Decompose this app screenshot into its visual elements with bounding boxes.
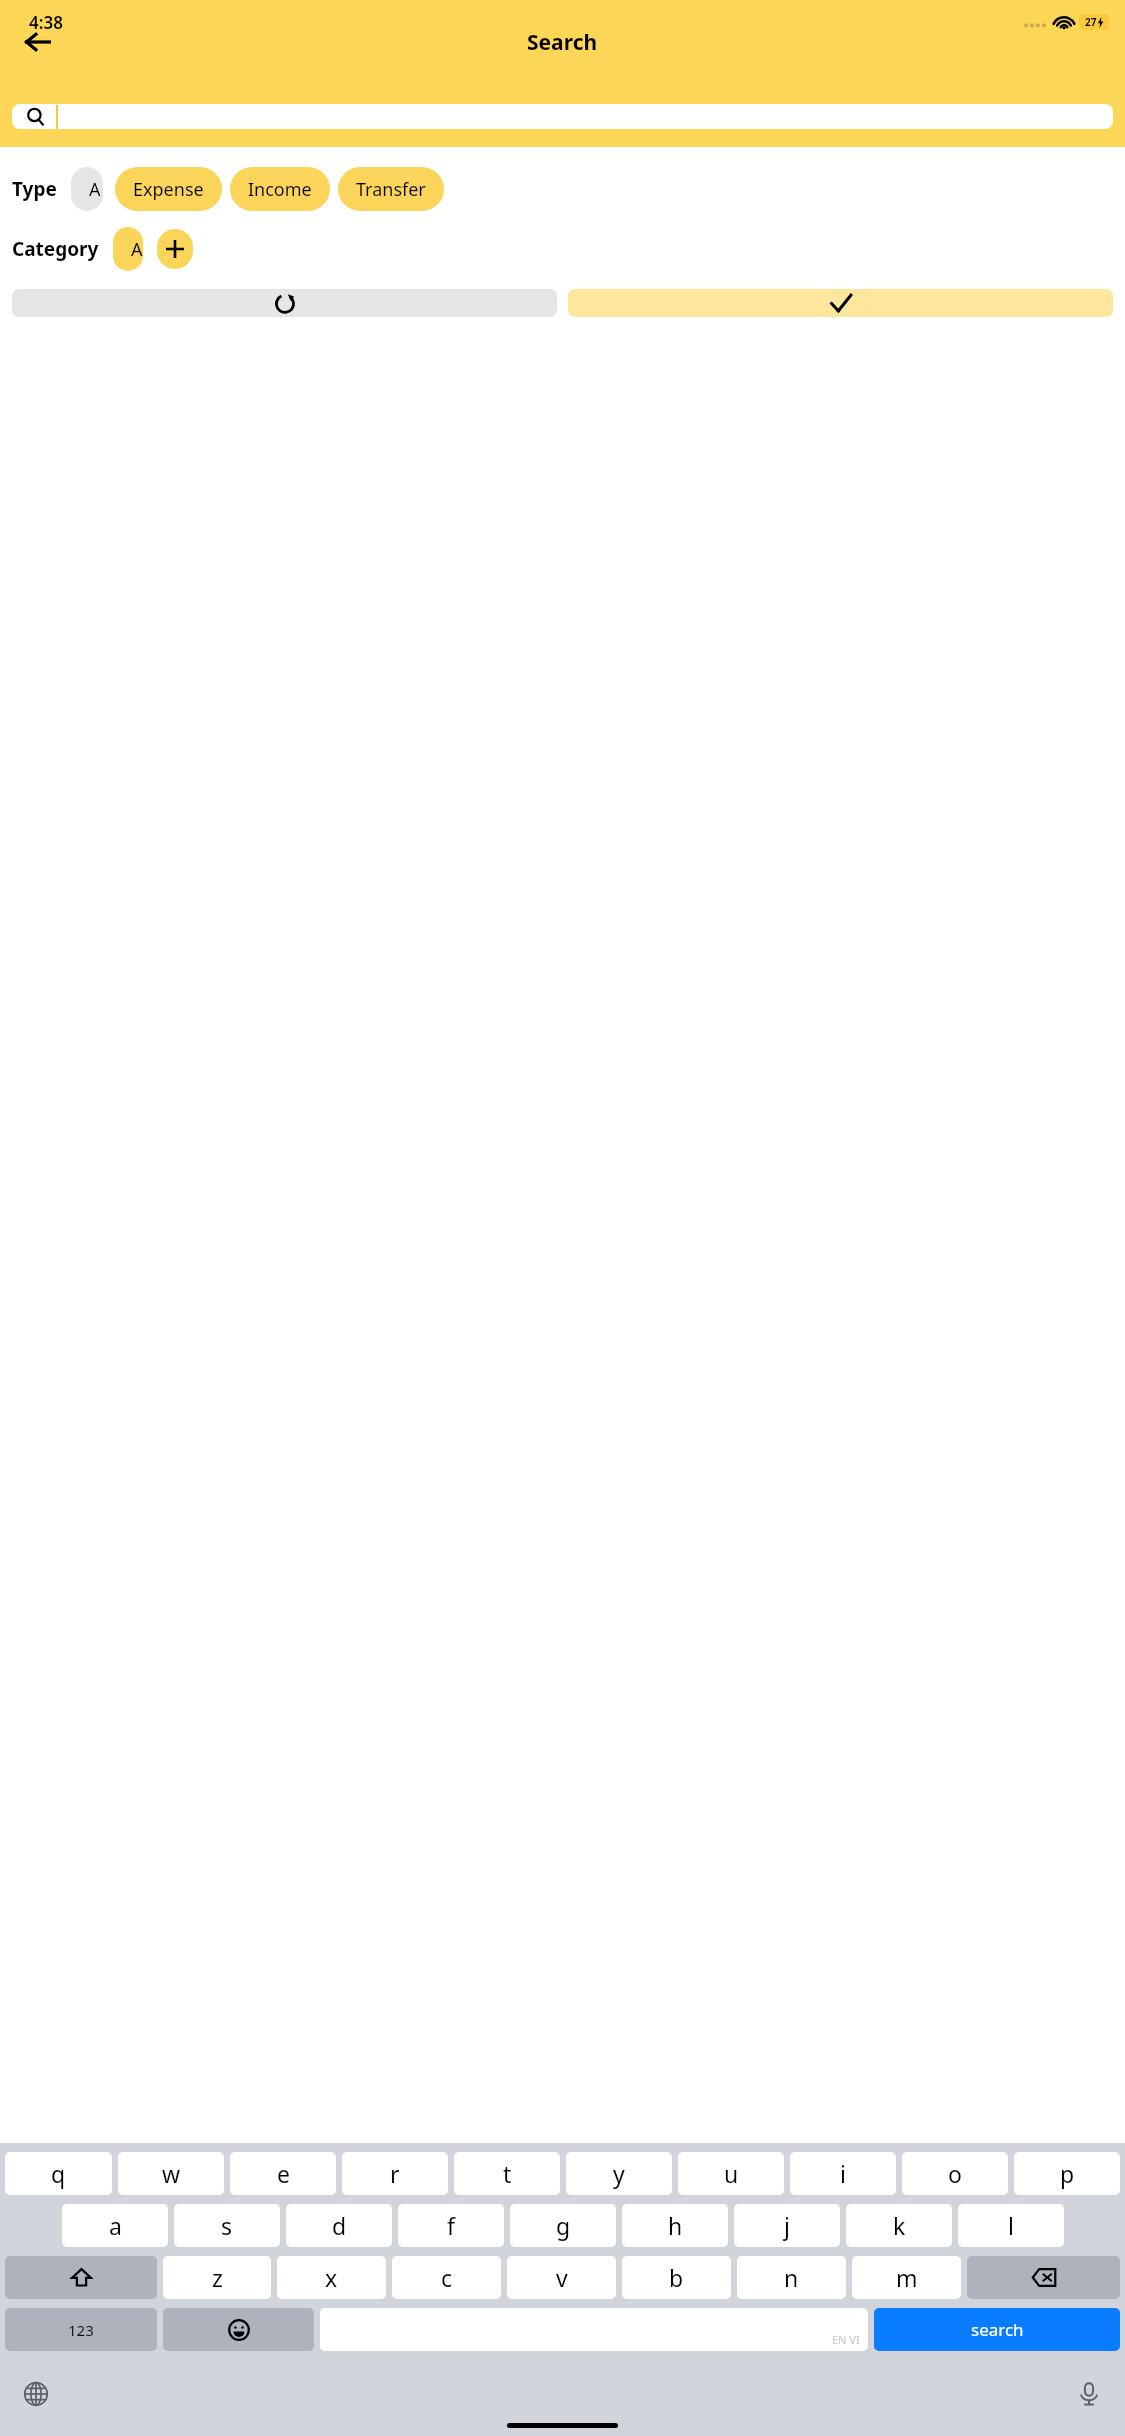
staticText: 4:38 xyxy=(29,11,63,34)
button[interactable]: h xyxy=(622,2204,728,2247)
button[interactable]: c xyxy=(392,2256,501,2299)
staticText: n xyxy=(784,2262,799,2293)
staticText: t xyxy=(503,2158,512,2189)
staticText: q xyxy=(51,2158,66,2189)
staticText: r xyxy=(390,2158,400,2189)
button[interactable]: 123 xyxy=(5,2308,157,2351)
staticText: w xyxy=(162,2158,181,2189)
staticText: g xyxy=(556,2210,571,2241)
staticText: j xyxy=(784,2210,790,2241)
button[interactable]: Change language xyxy=(14,2372,58,2416)
button[interactable]: Back xyxy=(14,18,62,66)
staticText: Category xyxy=(12,236,99,262)
staticText: i xyxy=(840,2158,846,2189)
staticText: z xyxy=(212,2262,223,2293)
staticText: u xyxy=(724,2158,739,2189)
button[interactable]: i xyxy=(790,2152,896,2195)
button[interactable]: g xyxy=(510,2204,616,2247)
button[interactable]: b xyxy=(622,2256,731,2299)
button[interactable]: m xyxy=(852,2256,961,2299)
button[interactable]: Reset xyxy=(12,289,557,317)
button[interactable]: p xyxy=(1014,2152,1120,2195)
staticText: Search xyxy=(527,28,598,57)
staticText: s xyxy=(221,2210,233,2241)
button[interactable]: q xyxy=(5,2152,112,2195)
button[interactable]: t xyxy=(454,2152,560,2195)
staticText: d xyxy=(332,2210,347,2241)
staticText: v xyxy=(556,2262,568,2293)
button[interactable]: f xyxy=(398,2204,504,2247)
staticText: y xyxy=(613,2158,625,2189)
button[interactable]: e xyxy=(230,2152,336,2195)
button[interactable]: n xyxy=(737,2256,846,2299)
button[interactable]: u xyxy=(678,2152,784,2195)
button[interactable]: All xyxy=(113,227,143,271)
staticText: 123 xyxy=(68,2320,94,2340)
button[interactable]: z xyxy=(163,2256,271,2299)
button[interactable]: Income xyxy=(230,167,330,211)
staticText: a xyxy=(109,2210,122,2241)
button[interactable]: d xyxy=(286,2204,392,2247)
staticText: 27 xyxy=(1085,15,1097,29)
staticText: e xyxy=(277,2158,290,2189)
button[interactable]: Transfer xyxy=(338,167,444,211)
button[interactable]: Shift xyxy=(5,2256,157,2299)
staticText: k xyxy=(893,2210,906,2241)
staticText: o xyxy=(948,2158,962,2189)
staticText: h xyxy=(668,2210,683,2241)
staticText: Expense xyxy=(133,177,204,202)
staticText: l xyxy=(1008,2210,1014,2241)
button[interactable]: Expense xyxy=(115,167,222,211)
staticText: c xyxy=(441,2262,453,2293)
staticText: m xyxy=(896,2262,918,2293)
button[interactable]: w xyxy=(118,2152,224,2195)
button[interactable]: k xyxy=(846,2204,952,2247)
button[interactable]: s xyxy=(174,2204,280,2247)
button[interactable]: r xyxy=(342,2152,448,2195)
button[interactable]: a xyxy=(62,2204,168,2247)
staticText: Income xyxy=(248,177,312,202)
button[interactable]: search xyxy=(874,2308,1120,2351)
button[interactable]: Apply xyxy=(568,289,1113,317)
button[interactable]: Add category xyxy=(157,229,193,269)
staticText: b xyxy=(669,2262,684,2293)
staticText: Type xyxy=(12,176,57,202)
button[interactable]: x xyxy=(277,2256,386,2299)
button[interactable]: Backspace xyxy=(967,2256,1120,2299)
button[interactable]: o xyxy=(902,2152,1008,2195)
button[interactable]: j xyxy=(734,2204,840,2247)
button[interactable]: l xyxy=(958,2204,1064,2247)
staticText: Transfer xyxy=(356,177,426,202)
staticText: p xyxy=(1060,2158,1075,2189)
button[interactable]: Voice input xyxy=(1067,2372,1111,2416)
button[interactable]: y xyxy=(566,2152,672,2195)
staticText: x xyxy=(325,2262,338,2293)
button[interactable]: All xyxy=(71,167,103,211)
staticText: search xyxy=(971,2318,1024,2341)
button[interactable]: v xyxy=(507,2256,616,2299)
button[interactable]: Emoji xyxy=(163,2308,314,2351)
staticText: f xyxy=(447,2210,455,2241)
button[interactable] xyxy=(12,104,1113,129)
staticText: EN VI xyxy=(832,2332,860,2347)
